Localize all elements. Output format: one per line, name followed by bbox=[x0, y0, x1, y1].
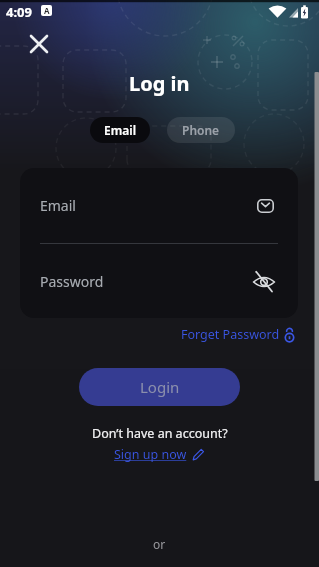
button[interactable]: Password bbox=[20, 244, 298, 318]
button[interactable]: Email bbox=[20, 168, 298, 243]
staticText: Log in bbox=[129, 70, 190, 97]
staticText: Don’t have an account? bbox=[92, 425, 228, 442]
button[interactable]: Login bbox=[79, 368, 240, 406]
staticText: Email bbox=[104, 122, 137, 138]
button[interactable]: Phone bbox=[167, 117, 235, 143]
staticText: A bbox=[44, 5, 50, 16]
staticText: Login bbox=[140, 377, 180, 397]
staticText: Forget Password bbox=[181, 326, 280, 343]
button[interactable]: Forget Password bbox=[181, 326, 295, 343]
staticText: Sign up now bbox=[114, 446, 187, 463]
button[interactable]: Email bbox=[90, 117, 150, 143]
button[interactable]: Sign up now bbox=[114, 446, 205, 463]
staticText: or bbox=[153, 536, 166, 552]
staticText: Password bbox=[40, 272, 104, 291]
button[interactable] bbox=[19, 24, 59, 64]
staticText: 4:09 bbox=[6, 3, 32, 21]
staticText: Phone bbox=[182, 122, 220, 138]
staticText: Email bbox=[40, 196, 76, 215]
